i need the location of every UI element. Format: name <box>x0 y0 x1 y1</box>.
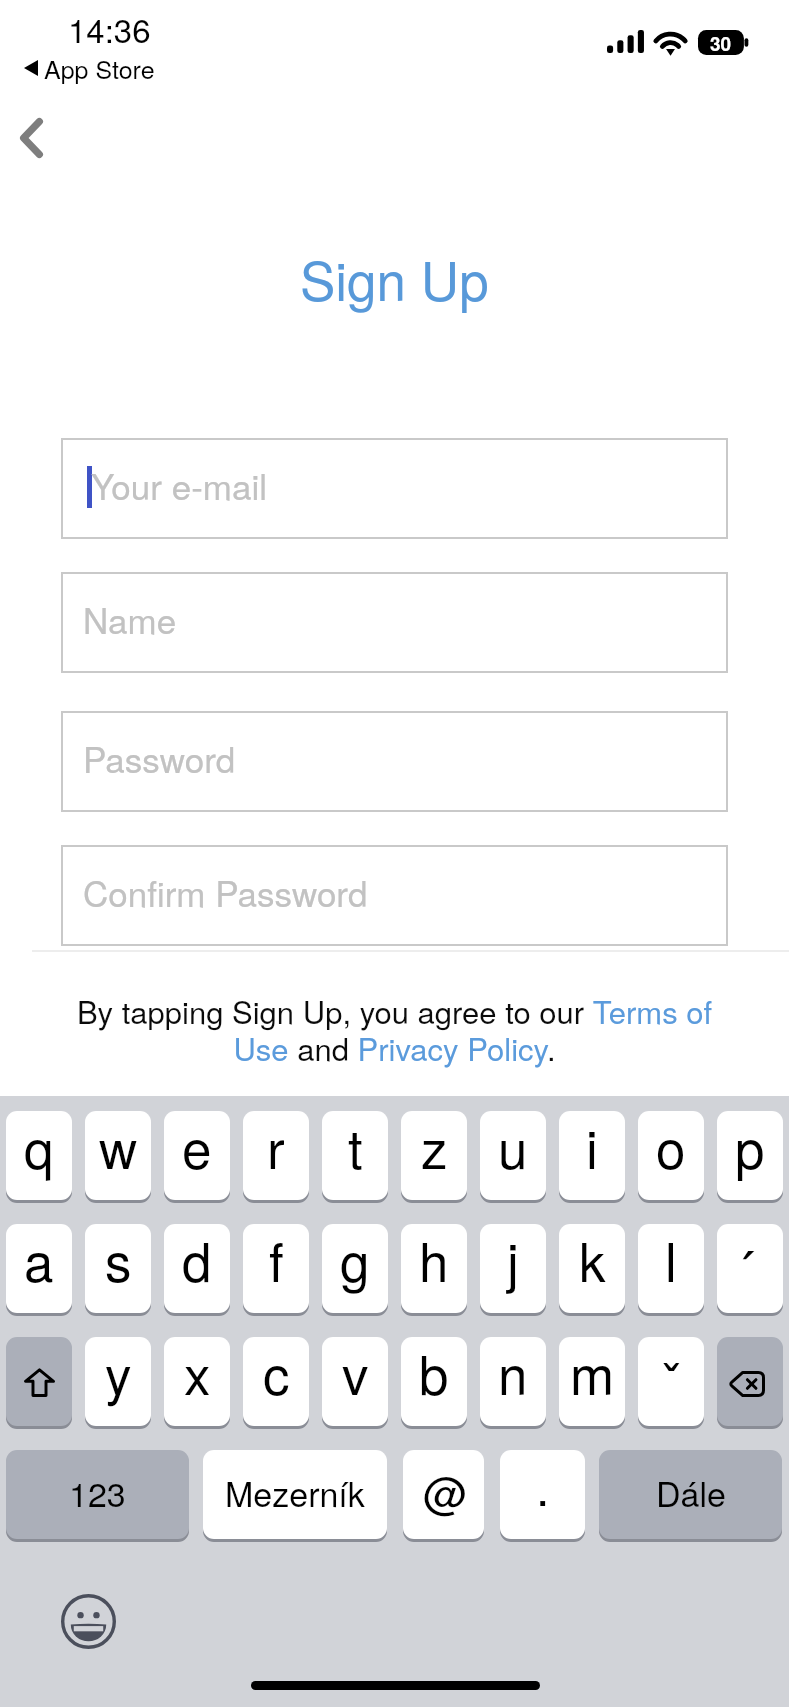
staticText: o <box>656 1111 686 1184</box>
button[interactable]: Name <box>61 572 728 673</box>
staticText: z <box>421 1111 448 1184</box>
staticText: h <box>419 1224 449 1297</box>
button[interactable]: t <box>322 1111 388 1200</box>
button[interactable]: y <box>85 1337 151 1426</box>
staticText: e <box>182 1111 212 1184</box>
button[interactable]: Shift <box>6 1337 72 1426</box>
staticText: l <box>665 1224 677 1297</box>
staticText: Dále <box>656 1468 726 1517</box>
staticText: y <box>105 1337 132 1410</box>
staticText: Sign Up <box>300 240 489 316</box>
staticText: f <box>269 1224 284 1297</box>
button[interactable]: Backspace <box>717 1337 783 1426</box>
button[interactable]: s <box>85 1224 151 1313</box>
staticText: x <box>184 1337 211 1410</box>
staticText: d <box>182 1224 212 1297</box>
button[interactable]: App Store <box>24 50 155 86</box>
button[interactable]: a <box>6 1224 72 1313</box>
staticText: q <box>24 1111 54 1184</box>
button[interactable]: . <box>500 1450 585 1539</box>
button[interactable]: Emoji keyboard <box>61 1594 116 1649</box>
button[interactable]: Mezerník <box>203 1450 387 1539</box>
button[interactable]: e <box>164 1111 230 1200</box>
staticText: w <box>99 1111 138 1184</box>
staticText: Your e-mail <box>91 460 267 510</box>
staticText: s <box>105 1224 132 1297</box>
staticText: 14:36 <box>68 5 151 52</box>
staticText: k <box>579 1224 606 1297</box>
button[interactable]: x <box>164 1337 230 1426</box>
button[interactable]: j <box>480 1224 546 1313</box>
button[interactable]: Back <box>0 100 64 176</box>
button[interactable]: b <box>401 1337 467 1426</box>
staticText: @ <box>423 1459 468 1522</box>
staticText: ´ <box>735 1228 754 1308</box>
button[interactable]: ´ <box>717 1224 783 1313</box>
button[interactable]: 123 <box>6 1450 189 1539</box>
button[interactable]: l <box>638 1224 704 1313</box>
staticText: App Store <box>44 50 155 86</box>
button[interactable]: r <box>243 1111 309 1200</box>
button[interactable]: ˇ <box>638 1337 704 1426</box>
staticText: 123 <box>69 1468 126 1517</box>
button[interactable]: @ <box>403 1450 484 1539</box>
staticText: v <box>342 1337 369 1410</box>
staticText: b <box>419 1337 449 1410</box>
button[interactable]: z <box>401 1111 467 1200</box>
button[interactable]: h <box>401 1224 467 1313</box>
staticText: m <box>570 1337 615 1410</box>
staticText: u <box>498 1111 528 1184</box>
staticText: j <box>507 1224 519 1297</box>
staticText: n <box>498 1337 528 1410</box>
button[interactable]: g <box>322 1224 388 1313</box>
button[interactable]: Dále <box>599 1450 782 1539</box>
button[interactable]: k <box>559 1224 625 1313</box>
staticText: ˇ <box>662 1340 681 1420</box>
staticText: Name <box>83 594 177 644</box>
button[interactable]: i <box>559 1111 625 1200</box>
staticText: . <box>536 1451 550 1520</box>
button[interactable]: By tapping Sign Up, you agree to our Ter… <box>62 988 727 1069</box>
button[interactable]: v <box>322 1337 388 1426</box>
button[interactable]: n <box>480 1337 546 1426</box>
staticText: r <box>267 1111 285 1184</box>
button[interactable]: c <box>243 1337 309 1426</box>
staticText: g <box>340 1224 370 1297</box>
staticText: 30 <box>710 30 732 55</box>
staticText: p <box>735 1111 765 1184</box>
staticText: t <box>348 1111 363 1184</box>
button[interactable]: u <box>480 1111 546 1200</box>
button[interactable]: o <box>638 1111 704 1200</box>
button[interactable]: w <box>85 1111 151 1200</box>
staticText: Confirm Password <box>83 867 368 917</box>
button[interactable]: Your e-mail <box>61 438 728 539</box>
staticText: a <box>24 1224 54 1297</box>
button[interactable]: q <box>6 1111 72 1200</box>
button[interactable]: p <box>717 1111 783 1200</box>
button[interactable]: Password <box>61 711 728 812</box>
button[interactable]: m <box>559 1337 625 1426</box>
staticText: Password <box>83 733 236 783</box>
button[interactable]: d <box>164 1224 230 1313</box>
button[interactable]: Confirm Password <box>61 845 728 946</box>
button[interactable]: f <box>243 1224 309 1313</box>
staticText: Mezerník <box>225 1468 365 1517</box>
staticText: i <box>586 1111 598 1184</box>
staticText: c <box>263 1337 290 1410</box>
